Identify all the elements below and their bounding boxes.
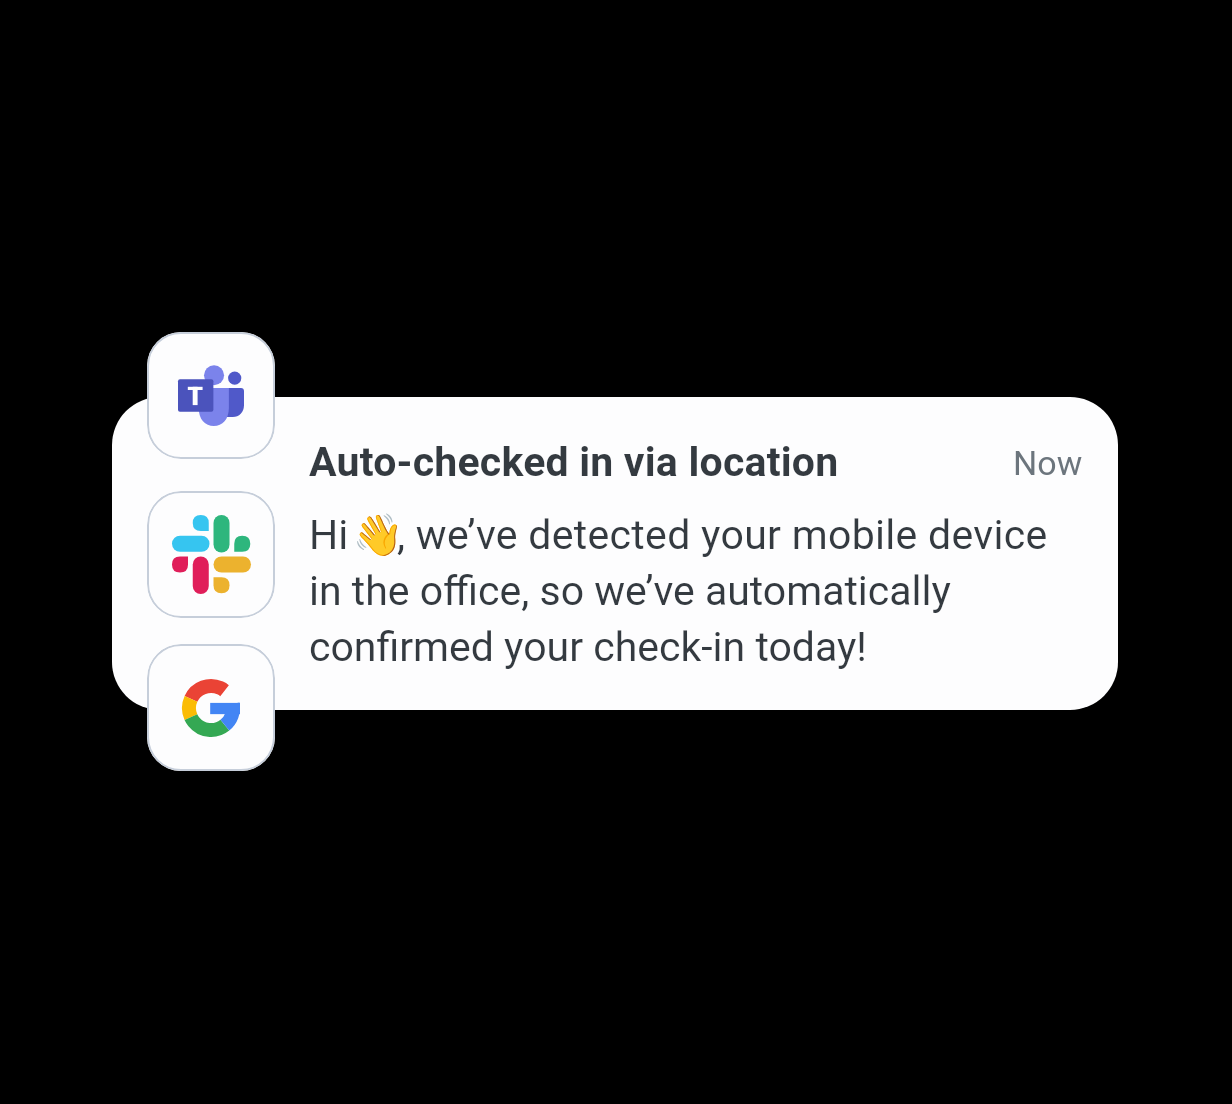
button[interactable]: Slack — [147, 491, 275, 618]
staticText: Auto-checked in via location — [309, 438, 839, 486]
button[interactable]: Microsoft Teams — [147, 332, 275, 459]
button[interactable]: Google — [147, 644, 275, 771]
staticText: in the office, so we’ve automatically — [309, 567, 951, 615]
staticText: confirmed your check-in today! — [309, 623, 867, 671]
staticText: Hi 👋, we’ve detected your mobile device — [309, 511, 1048, 559]
staticText: Now — [1013, 443, 1083, 483]
button[interactable]: Auto-checked in via location — [112, 397, 1118, 710]
